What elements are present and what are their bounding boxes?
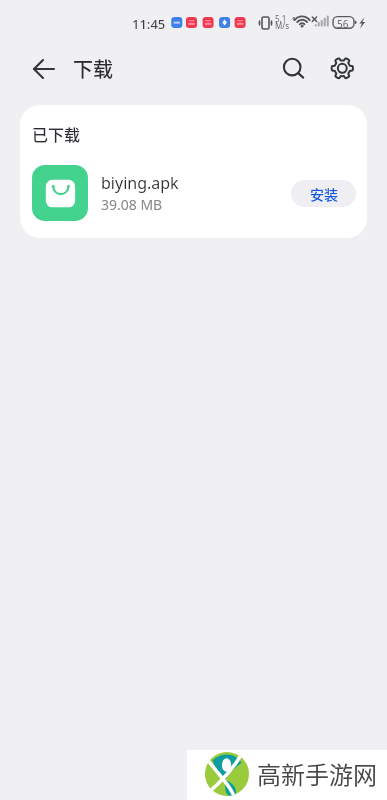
staticText: 下载 xyxy=(73,54,113,83)
staticText: 已下载 xyxy=(32,122,81,145)
staticText: 高新手游网 xyxy=(257,756,377,791)
staticText: 5.1 xyxy=(275,13,287,24)
staticText: 安装 xyxy=(310,184,338,204)
button[interactable]: Back xyxy=(24,53,64,85)
button[interactable]: Search xyxy=(276,51,310,87)
staticText: 39.08 MB xyxy=(101,195,163,214)
staticText: biying.apk xyxy=(101,172,179,194)
staticText: 11:45 xyxy=(132,15,166,33)
button[interactable]: Settings xyxy=(326,51,360,87)
staticText: 56 xyxy=(337,17,349,31)
button[interactable]: biying.apk xyxy=(20,165,367,221)
button[interactable]: 安装 xyxy=(291,180,356,207)
staticText: M/s xyxy=(275,20,290,31)
